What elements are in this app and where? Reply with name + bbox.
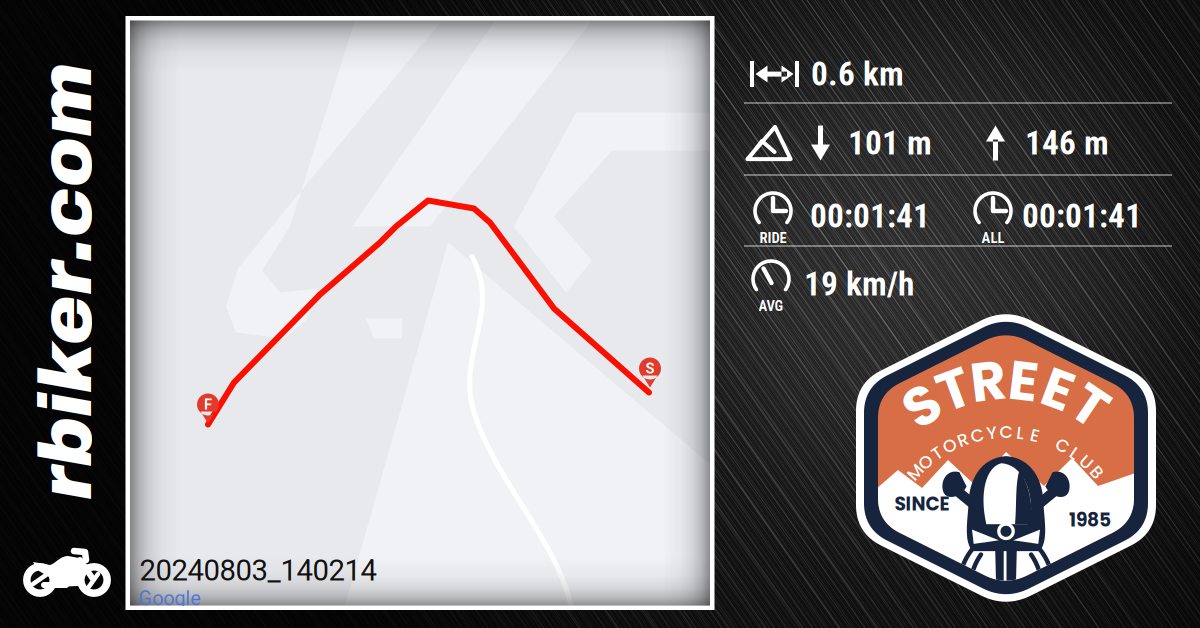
button[interactable]: rbiker.com — [0, 244, 292, 318]
staticText: 20240803_140214 — [139, 553, 376, 588]
staticText: SINCE — [894, 491, 949, 517]
staticText: L — [1017, 421, 1025, 445]
staticText: Google — [138, 587, 201, 610]
staticText: L — [1071, 441, 1079, 465]
staticText: C — [971, 423, 984, 448]
staticText: 1985 — [1069, 507, 1111, 533]
staticText: F — [204, 396, 212, 413]
staticText: S — [645, 360, 654, 377]
staticText: E — [1043, 351, 1073, 428]
staticText: M — [908, 460, 923, 484]
staticText: ALL — [981, 229, 1004, 247]
staticText: U — [1080, 450, 1092, 474]
staticText: rbiker.com — [0, 240, 285, 322]
staticText: O — [943, 434, 957, 458]
staticText: AVG — [758, 297, 783, 315]
staticText: 19 km/h — [804, 264, 914, 304]
staticText: T — [938, 351, 970, 428]
staticText: 00:01:41 — [1022, 196, 1142, 236]
staticText: C — [999, 420, 1012, 444]
staticText: 146 m — [1025, 123, 1109, 163]
staticText: RIDE — [759, 229, 786, 247]
staticText: 00:01:41 — [810, 196, 930, 236]
staticText: T — [1074, 367, 1106, 444]
staticText: R — [958, 428, 969, 452]
staticText: B — [1091, 460, 1102, 484]
staticText: S — [905, 367, 939, 444]
staticText: O — [919, 450, 933, 474]
staticText: 0.6 km — [811, 54, 904, 94]
staticText: E — [1030, 423, 1039, 448]
staticText: T — [932, 441, 942, 465]
staticText: Y — [986, 421, 996, 445]
staticText: 101 m — [848, 123, 932, 163]
staticText: C — [1056, 434, 1069, 458]
staticText: E — [1009, 343, 1039, 419]
staticText: R — [970, 343, 1006, 419]
